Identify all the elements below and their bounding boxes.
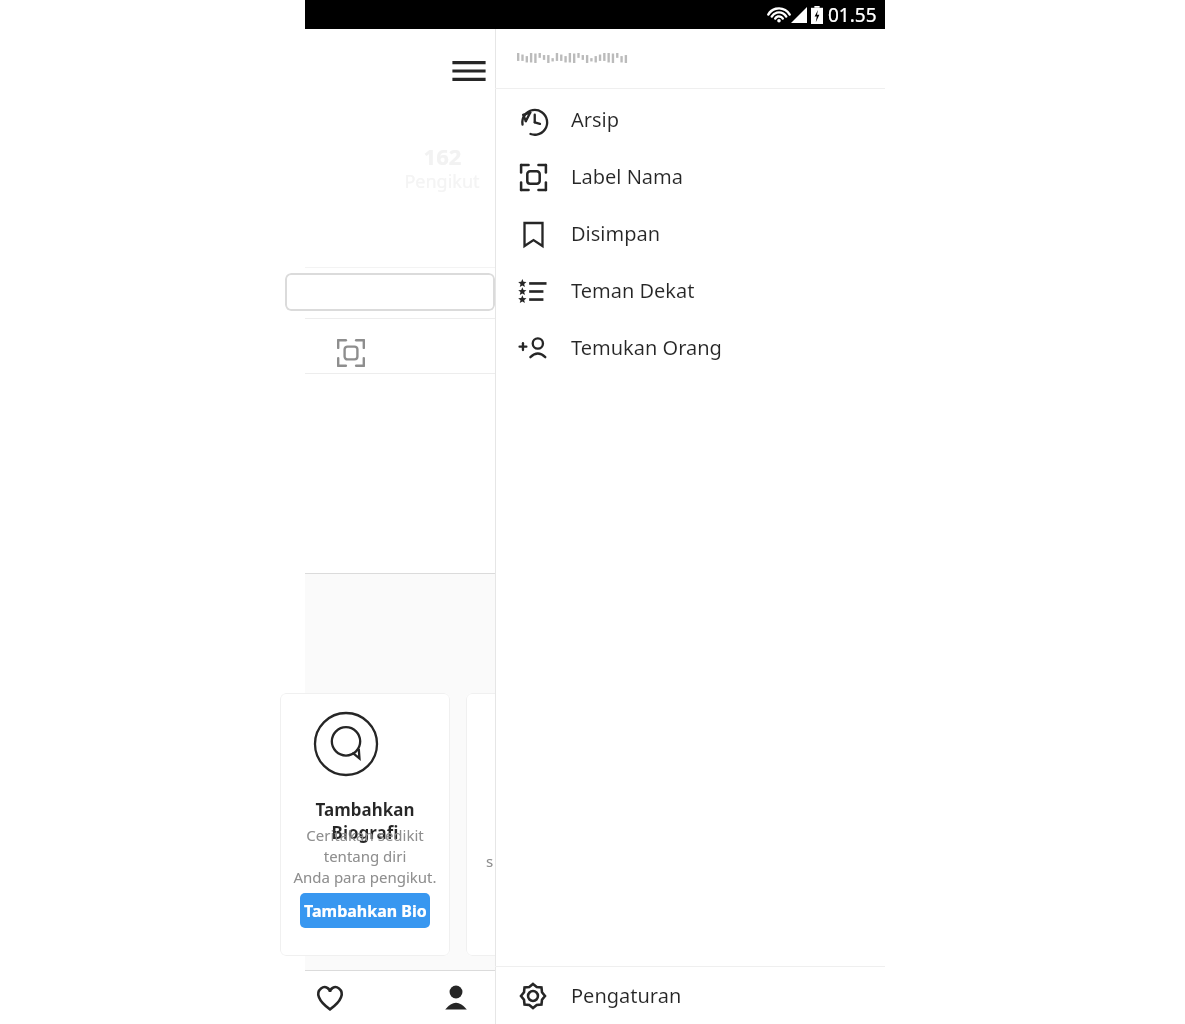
button[interactable]: Temukan Orang	[495, 319, 885, 376]
staticText: 162	[385, 141, 500, 171]
staticText: Label Nama	[571, 163, 683, 190]
staticText: Arsip	[571, 106, 620, 133]
staticText: 01.55	[828, 2, 877, 28]
button[interactable]: Pengaturan	[495, 967, 885, 1024]
button[interactable]: Nametag	[327, 329, 375, 377]
button[interactable]: Teman Dekat	[495, 262, 885, 319]
staticText: Disimpan	[571, 220, 661, 247]
staticText: Tambahkan Biografi	[280, 798, 450, 844]
staticText: s	[486, 851, 494, 871]
button[interactable]: Menu	[443, 45, 495, 97]
button[interactable]: Arsip	[495, 91, 885, 148]
staticText: Tambahkan Bio	[304, 900, 427, 922]
staticText: Ceritakan sedikit tentang diri Anda para…	[280, 825, 450, 888]
button[interactable]: Activity	[299, 971, 361, 1024]
button[interactable]	[285, 273, 495, 311]
button[interactable]: Tambahkan Bio	[300, 893, 430, 928]
staticText: Teman Dekat	[571, 277, 695, 304]
staticText: Temukan Orang	[571, 334, 722, 361]
button[interactable]: Profile	[425, 971, 487, 1024]
button[interactable]: Disimpan	[495, 205, 885, 262]
button[interactable]: Label Nama	[495, 148, 885, 205]
staticText: Pengaturan	[571, 982, 682, 1009]
staticText: Pengikut	[367, 169, 517, 194]
